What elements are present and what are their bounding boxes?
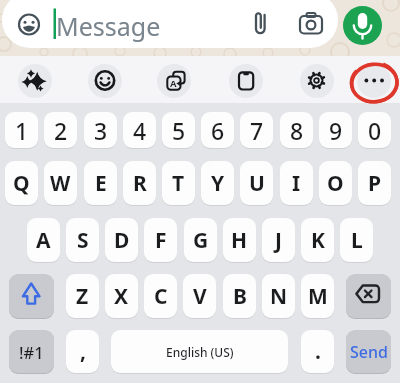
staticText: H bbox=[231, 226, 248, 255]
staticText: , bbox=[80, 337, 86, 366]
button[interactable]: 9 bbox=[319, 112, 352, 148]
staticText: 1 bbox=[15, 115, 29, 146]
button[interactable] bbox=[18, 64, 52, 98]
button[interactable]: 5 bbox=[162, 112, 195, 148]
button[interactable]: L bbox=[340, 218, 373, 262]
button[interactable] bbox=[9, 274, 54, 318]
button[interactable]: Send bbox=[346, 330, 391, 373]
staticText: 6 bbox=[211, 115, 225, 146]
staticText: L bbox=[351, 226, 363, 255]
button[interactable]: 2 bbox=[44, 112, 77, 148]
button[interactable]: C bbox=[144, 274, 177, 318]
button[interactable]: A bbox=[27, 218, 60, 262]
staticText: B bbox=[233, 282, 247, 311]
staticText: M bbox=[308, 282, 328, 311]
button[interactable] bbox=[300, 64, 334, 98]
staticText: T bbox=[172, 169, 185, 198]
button[interactable]: F bbox=[144, 218, 177, 262]
button[interactable]: K bbox=[301, 218, 334, 262]
button[interactable]: H bbox=[223, 218, 256, 262]
button[interactable]: 7 bbox=[240, 112, 273, 148]
button[interactable]: E bbox=[84, 161, 117, 205]
button[interactable]: 6 bbox=[201, 112, 234, 148]
button[interactable]: !#1 bbox=[9, 330, 54, 373]
button[interactable]: J bbox=[262, 218, 295, 262]
staticText: E bbox=[95, 169, 107, 198]
staticText: D bbox=[114, 226, 130, 255]
button[interactable]: I bbox=[280, 161, 313, 205]
staticText: J bbox=[275, 226, 282, 255]
staticText: 7 bbox=[250, 115, 264, 146]
staticText: Send bbox=[350, 341, 388, 363]
staticText: Y bbox=[211, 169, 225, 198]
button[interactable] bbox=[346, 274, 391, 318]
staticText: 0 bbox=[368, 115, 382, 146]
staticText: I bbox=[292, 169, 301, 198]
button[interactable]: Q bbox=[5, 161, 38, 205]
staticText: Z bbox=[76, 282, 89, 311]
staticText: A bbox=[170, 77, 177, 90]
staticText: U bbox=[249, 169, 265, 198]
button[interactable]: 4 bbox=[123, 112, 156, 148]
staticText: 3 bbox=[94, 115, 108, 146]
staticText: C bbox=[154, 282, 168, 311]
button[interactable]: Z bbox=[66, 274, 99, 318]
staticText: Q bbox=[13, 169, 30, 198]
button[interactable] bbox=[357, 64, 391, 98]
button[interactable]: R bbox=[123, 161, 156, 205]
button[interactable]: 0 bbox=[358, 112, 391, 148]
staticText: Message bbox=[56, 9, 161, 43]
button[interactable]: . bbox=[301, 330, 334, 373]
staticText: S bbox=[77, 226, 89, 255]
button[interactable]: G bbox=[184, 218, 217, 262]
staticText: P bbox=[368, 169, 382, 198]
staticText: . bbox=[315, 337, 321, 366]
staticText: R bbox=[133, 169, 147, 198]
staticText: !#1 bbox=[19, 341, 44, 363]
staticText: V bbox=[193, 282, 207, 311]
button[interactable]: 1 bbox=[5, 112, 38, 148]
staticText: English (US) bbox=[166, 344, 234, 360]
button[interactable]: Y bbox=[201, 161, 234, 205]
staticText: G bbox=[193, 226, 209, 255]
button[interactable]: English (US) bbox=[111, 330, 288, 373]
staticText: K bbox=[311, 226, 325, 255]
staticText: F bbox=[155, 226, 167, 255]
button[interactable]: B bbox=[223, 274, 256, 318]
button[interactable]: T bbox=[162, 161, 195, 205]
button[interactable]: S bbox=[66, 218, 99, 262]
button[interactable]: O bbox=[319, 161, 352, 205]
staticText: 8 bbox=[290, 115, 304, 146]
button[interactable]: V bbox=[183, 274, 216, 318]
button[interactable]: P bbox=[358, 161, 391, 205]
button[interactable]: D bbox=[105, 218, 138, 262]
staticText: A bbox=[36, 226, 51, 255]
button[interactable]: 3 bbox=[84, 112, 117, 148]
staticText: N bbox=[270, 282, 288, 311]
staticText: 9 bbox=[329, 115, 343, 146]
button[interactable]: N bbox=[262, 274, 295, 318]
staticText: 2 bbox=[54, 115, 68, 146]
button[interactable] bbox=[2, 0, 338, 48]
button[interactable]: , bbox=[66, 330, 99, 373]
button[interactable]: 8 bbox=[280, 112, 313, 148]
button[interactable] bbox=[229, 64, 263, 98]
button[interactable] bbox=[157, 64, 191, 98]
staticText: O bbox=[327, 169, 344, 198]
staticText: 4 bbox=[133, 115, 147, 146]
staticText: 5 bbox=[172, 115, 186, 146]
button[interactable] bbox=[343, 6, 382, 45]
button[interactable]: M bbox=[301, 274, 334, 318]
button[interactable]: U bbox=[240, 161, 273, 205]
button[interactable] bbox=[88, 64, 122, 98]
staticText: X bbox=[114, 282, 129, 311]
staticText: W bbox=[50, 169, 71, 198]
button[interactable]: X bbox=[105, 274, 138, 318]
button[interactable]: W bbox=[44, 161, 77, 205]
